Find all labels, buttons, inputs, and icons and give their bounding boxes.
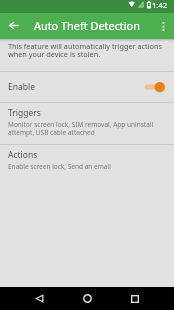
button[interactable]: Back [0, 13, 26, 39]
button[interactable]: Enable [0, 72, 174, 102]
button[interactable]: Triggers [0, 103, 174, 144]
staticText: Monitor screen lock, SIM removal, App un… [8, 120, 166, 137]
button[interactable]: Back [15, 287, 63, 310]
button[interactable]: Home [63, 287, 111, 310]
staticText: Actions [8, 149, 38, 161]
staticText: 1:42 [152, 0, 168, 10]
button[interactable]: More options [153, 13, 174, 39]
button[interactable]: Actions [0, 145, 174, 178]
staticText: Enable [8, 81, 35, 93]
staticText: Triggers [8, 107, 41, 119]
button[interactable]: Enable toggle [144, 81, 166, 93]
staticText: Enable screen lock, Send an email [8, 162, 111, 171]
button[interactable]: Recents [111, 287, 159, 310]
staticText: Auto Theft Detection [34, 18, 140, 33]
staticText: This feature will automatically trigger … [8, 41, 162, 60]
